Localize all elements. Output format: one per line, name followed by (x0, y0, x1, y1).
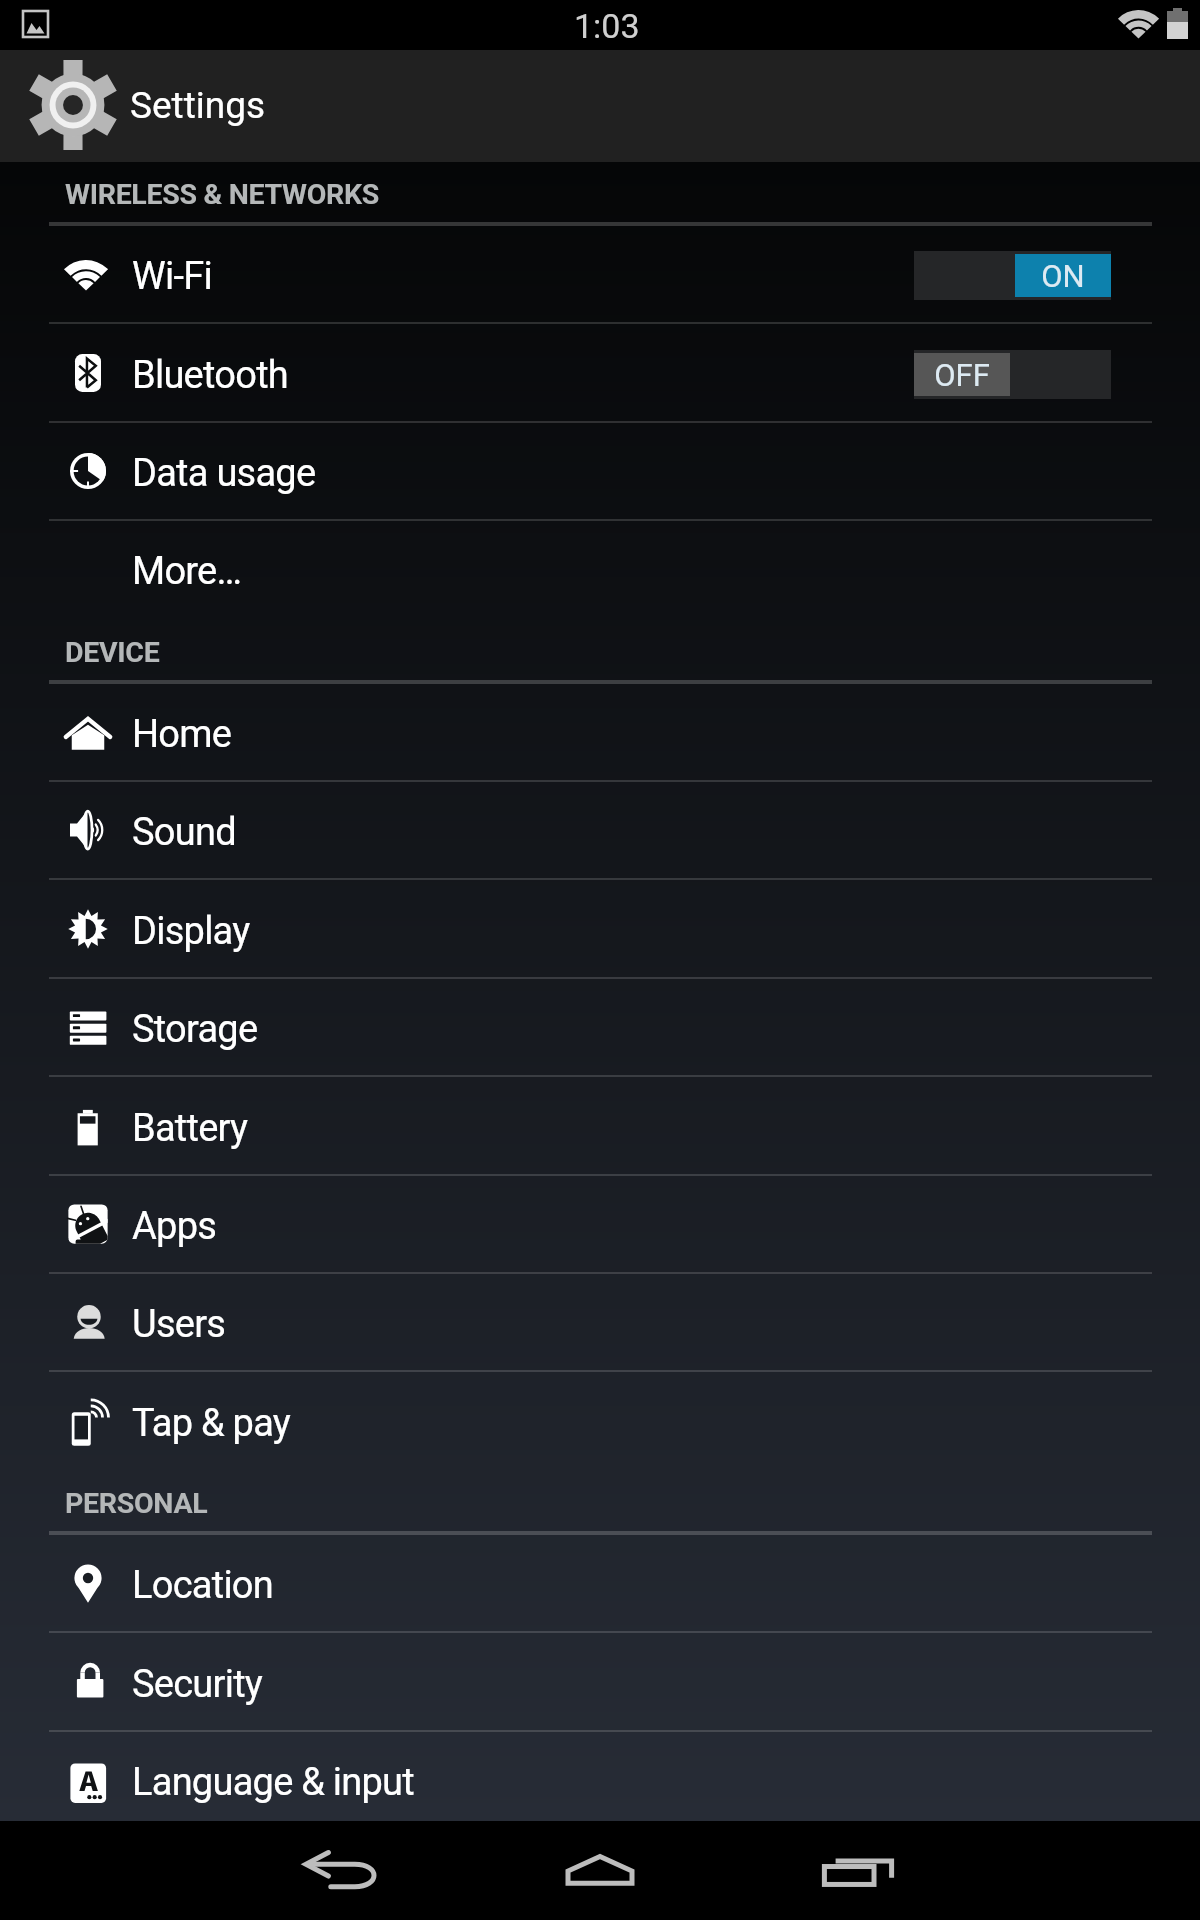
button[interactable]: Language & input (0, 1732, 1200, 1830)
button[interactable]: More… (0, 521, 1200, 619)
staticText: Tap & pay (132, 1401, 291, 1446)
staticText: Security (132, 1662, 263, 1707)
staticText: More… (132, 549, 242, 594)
button[interactable]: Apps (0, 1176, 1200, 1274)
button[interactable]: Back (282, 1821, 402, 1920)
staticText: Users (132, 1302, 226, 1347)
staticText: PERSONAL (65, 1487, 208, 1520)
staticText: Storage (132, 1007, 258, 1052)
staticText: Battery (132, 1106, 248, 1151)
button[interactable]: Storage (0, 979, 1200, 1077)
staticText: Wi-Fi (132, 254, 212, 299)
staticText: Language & input (132, 1760, 414, 1805)
button[interactable]: Data usage (0, 423, 1200, 521)
button[interactable]: OFF (914, 350, 1111, 399)
button[interactable]: ON (914, 251, 1111, 300)
staticText: ON (1041, 258, 1085, 294)
button[interactable]: Home (540, 1821, 660, 1920)
button[interactable]: Security (0, 1634, 1200, 1732)
staticText: Data usage (132, 451, 316, 496)
staticText: 1:03 (574, 6, 640, 46)
button[interactable]: Home (0, 684, 1200, 782)
button[interactable]: Wi-Fi (0, 226, 1200, 324)
button[interactable]: Users (0, 1274, 1200, 1372)
staticText: Location (132, 1563, 274, 1608)
button[interactable]: Bluetooth (0, 325, 1200, 423)
staticText: Display (132, 909, 250, 954)
staticText: Apps (132, 1204, 217, 1249)
button[interactable]: Recent apps (798, 1821, 918, 1920)
staticText: DEVICE (65, 636, 160, 669)
button[interactable]: Location (0, 1535, 1200, 1633)
button[interactable]: Battery (0, 1078, 1200, 1176)
button[interactable]: Tap & pay (0, 1373, 1200, 1471)
staticText: WIRELESS & NETWORKS (65, 178, 380, 211)
button[interactable]: Display (0, 881, 1200, 979)
staticText: Home (132, 712, 232, 757)
staticText: Settings (130, 84, 266, 127)
staticText: Sound (132, 810, 236, 855)
staticText: Bluetooth (132, 353, 289, 398)
button[interactable]: Sound (0, 782, 1200, 880)
staticText: OFF (934, 357, 990, 393)
